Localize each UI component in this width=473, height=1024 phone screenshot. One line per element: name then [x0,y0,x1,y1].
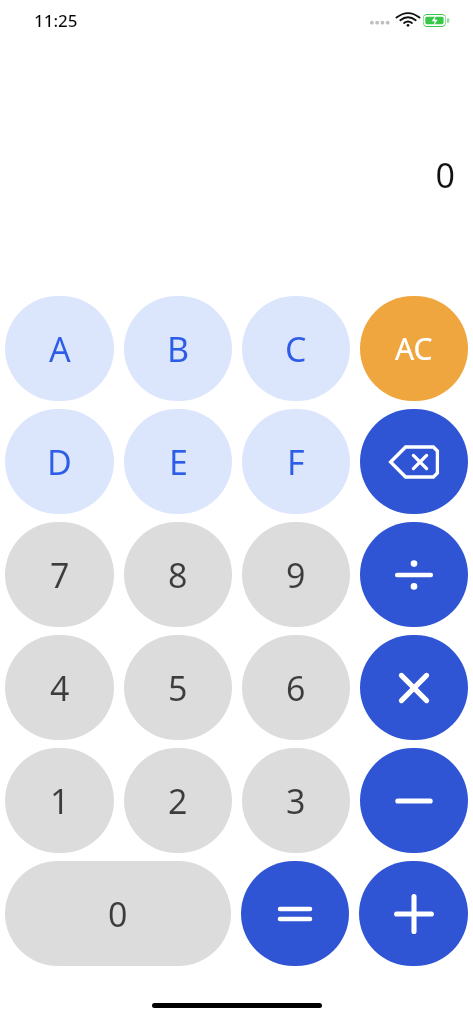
staticText: 11:25 [34,9,78,32]
button[interactable]: 1 [5,748,114,853]
staticText: 6 [286,665,306,711]
staticText: F [287,439,305,485]
button[interactable]: Minus [360,748,468,853]
button[interactable]: 5 [124,635,232,740]
staticText: 8 [168,552,188,598]
staticText: C [285,326,307,372]
staticText: 0 [108,891,128,937]
button[interactable]: B [124,296,232,401]
staticText: 2 [168,778,188,824]
staticText: D [47,439,72,485]
button[interactable]: 4 [5,635,114,740]
button[interactable]: 0 [5,861,231,966]
button[interactable]: E [124,409,232,514]
staticText: B [167,326,190,372]
staticText: E [169,439,188,485]
button[interactable]: C [242,296,350,401]
button[interactable]: 7 [5,522,114,627]
button[interactable]: Multiply [360,635,468,740]
staticText: 4 [50,665,70,711]
button[interactable]: A [5,296,114,401]
button[interactable]: 8 [124,522,232,627]
button[interactable]: D [5,409,114,514]
staticText: AC [395,328,433,369]
staticText: 7 [50,552,70,598]
staticText: 3 [286,778,306,824]
button[interactable]: Equals [241,861,349,966]
button[interactable]: 9 [242,522,350,627]
button[interactable]: Backspace [360,409,468,514]
staticText: 9 [286,552,306,598]
button[interactable]: Plus [359,861,468,966]
button[interactable]: 6 [242,635,350,740]
button[interactable]: F [242,409,350,514]
button[interactable]: 3 [242,748,350,853]
button[interactable]: AC [360,296,468,401]
staticText: 5 [168,665,188,711]
staticText: 0 [0,152,455,198]
button[interactable]: Divide [360,522,468,627]
button[interactable]: 2 [124,748,232,853]
staticText: A [49,326,71,372]
staticText: 1 [50,778,70,824]
